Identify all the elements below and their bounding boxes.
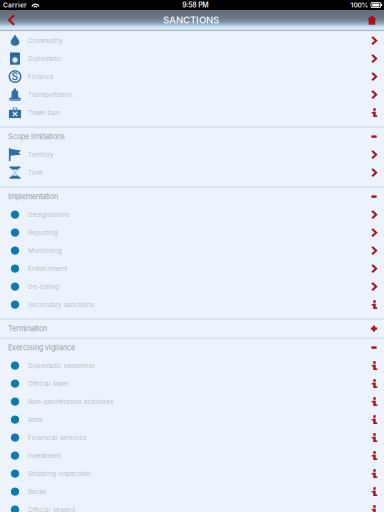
button[interactable]: Travel ban	[0, 104, 384, 122]
staticText: Investment	[28, 452, 61, 459]
staticText: 100%	[350, 1, 368, 9]
staticText: Finance	[28, 73, 54, 80]
staticText: Carrier	[3, 1, 27, 9]
staticText: Non-proliferation activities	[28, 398, 113, 405]
button[interactable]: Time	[0, 164, 384, 182]
staticText: SANCTIONS	[163, 14, 219, 26]
staticText: Official vessels	[28, 506, 75, 512]
button[interactable]: Home	[358, 10, 384, 30]
button[interactable]: Investment	[0, 447, 384, 465]
staticText: Official travel	[28, 380, 69, 387]
staticText: Travel ban	[28, 109, 60, 116]
button[interactable]: De-listing	[0, 278, 384, 296]
staticText: S	[11, 70, 18, 83]
button[interactable]: Implementation	[0, 188, 384, 206]
button[interactable]: Official travel	[0, 375, 384, 393]
button[interactable]: Transportation	[0, 86, 384, 104]
button[interactable]: Termination	[0, 320, 384, 338]
staticText: Arms	[28, 416, 42, 423]
staticText: Territory	[28, 151, 54, 158]
staticText: Scope limitations	[8, 132, 65, 141]
button[interactable]: Non-proliferation activities	[0, 393, 384, 411]
staticText: Time	[28, 169, 43, 176]
button[interactable]: Financial services	[0, 429, 384, 447]
button[interactable]: Reporting	[0, 224, 384, 242]
staticText: Shipping inspection	[28, 470, 91, 477]
staticText: 9:58 PM	[182, 1, 208, 9]
button[interactable]: Commodity	[0, 32, 384, 50]
button[interactable]: Territory	[0, 146, 384, 164]
button[interactable]: Arms	[0, 411, 384, 429]
button[interactable]: Enforcement	[0, 260, 384, 278]
button[interactable]: Back	[0, 10, 24, 30]
staticText: Enforcement	[28, 265, 67, 272]
button[interactable]: S	[0, 68, 384, 86]
staticText: Commodity	[28, 37, 63, 44]
staticText: Financial services	[28, 434, 86, 441]
button[interactable]: Scope limitations	[0, 128, 384, 146]
button[interactable]: Diplomatic	[0, 50, 384, 68]
staticText: De-listing	[28, 283, 59, 290]
staticText: Transportation	[28, 91, 73, 98]
button[interactable]: Diplomatic personnel	[0, 357, 384, 375]
staticText: Diplomatic	[28, 55, 62, 62]
button[interactable]: Designations	[0, 206, 384, 224]
staticText: Reporting	[28, 229, 58, 236]
button[interactable]: Banks	[0, 483, 384, 501]
button[interactable]: Monitoring	[0, 242, 384, 260]
button[interactable]: Shipping inspection	[0, 465, 384, 483]
staticText: Banks	[28, 488, 46, 495]
button[interactable]: Secondary sanctions	[0, 296, 384, 314]
button[interactable]: Official vessels	[0, 501, 384, 512]
staticText: Termination	[8, 324, 47, 333]
staticText: Exercising vigilance	[8, 343, 75, 352]
staticText: Secondary sanctions	[28, 301, 94, 308]
staticText: Designations	[28, 211, 69, 218]
staticText: Diplomatic personnel	[28, 362, 95, 369]
button[interactable]: Exercising vigilance	[0, 339, 384, 357]
staticText: Monitoring	[28, 247, 62, 254]
staticText: Implementation	[8, 192, 58, 201]
